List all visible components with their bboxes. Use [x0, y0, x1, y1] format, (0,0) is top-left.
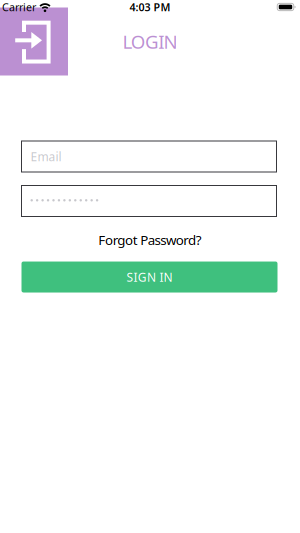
- button[interactable]: SIGN IN: [21, 261, 277, 292]
- staticText: LOGIN: [123, 29, 177, 54]
- staticText: Forgot Password?: [98, 231, 202, 249]
- button[interactable]: Forgot Password?: [98, 231, 202, 249]
- staticText: Carrier: [2, 0, 36, 14]
- staticText: SIGN IN: [126, 269, 173, 285]
- staticText: 4:03 PM: [129, 0, 170, 14]
- button[interactable]: [21, 185, 276, 216]
- staticText: Email: [30, 148, 61, 164]
- button[interactable]: Email: [21, 141, 276, 172]
